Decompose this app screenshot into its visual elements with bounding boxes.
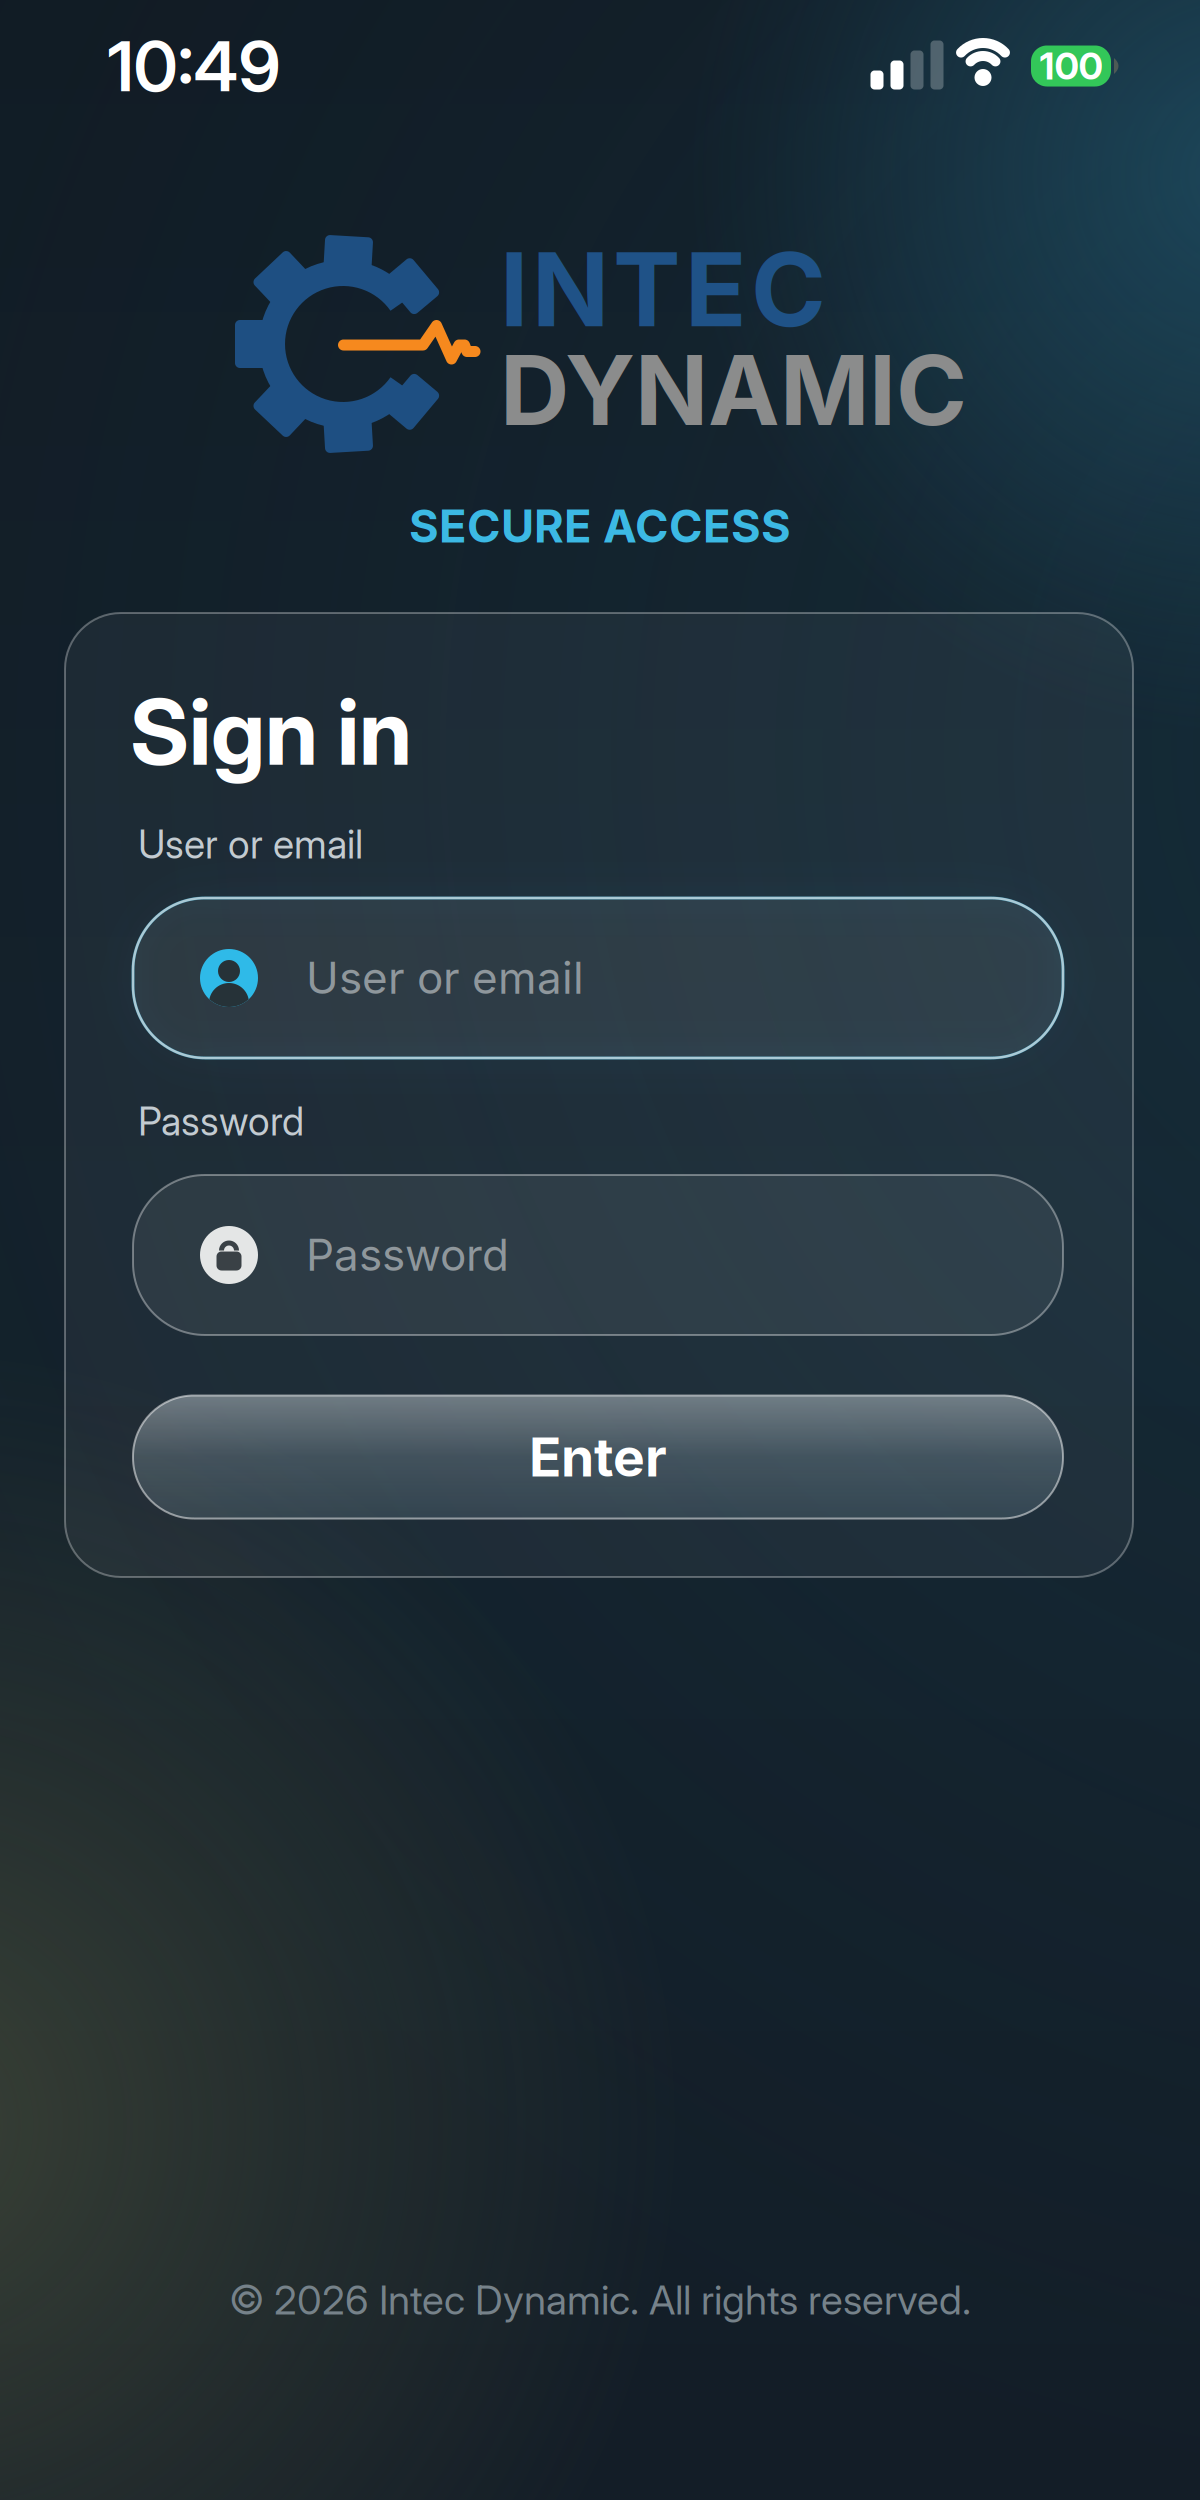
staticText: DYNAMIC xyxy=(500,332,967,448)
staticText: Password xyxy=(306,1228,509,1281)
staticText: INTEC xyxy=(500,228,826,351)
staticText: User or email xyxy=(306,951,584,1004)
staticText: SECURE ACCESS xyxy=(409,499,791,553)
staticText: 10:49 xyxy=(107,24,280,108)
staticText: Password xyxy=(138,1098,304,1145)
staticText: Sign in xyxy=(130,677,412,787)
staticText: © 2026 Intec Dynamic. All rights reserve… xyxy=(229,2276,971,2324)
button[interactable]: User or email xyxy=(133,898,1063,1058)
button[interactable]: Password xyxy=(133,1175,1063,1335)
staticText: User or email xyxy=(138,821,363,868)
staticText: 100 xyxy=(1039,43,1102,89)
staticText: Enter xyxy=(529,1425,667,1489)
button[interactable]: Enter xyxy=(133,1395,1063,1518)
